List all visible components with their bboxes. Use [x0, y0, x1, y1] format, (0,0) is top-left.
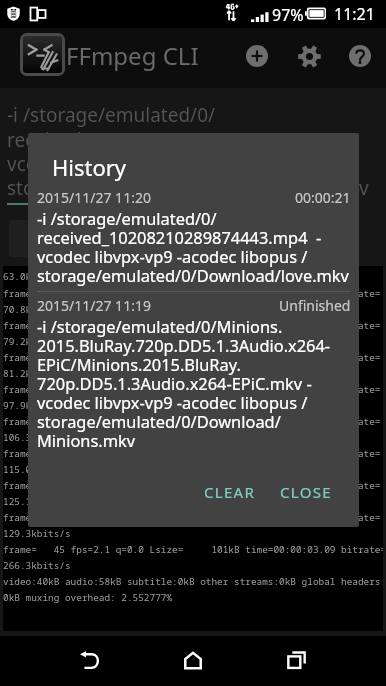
staticText: 2015/11/27 11:20	[37, 188, 151, 207]
button[interactable]: Settings	[293, 40, 325, 72]
button[interactable]: Add	[241, 40, 273, 72]
staticText: FFmpeg CLI	[66, 39, 199, 72]
button[interactable]: CLEAR	[192, 470, 268, 514]
staticText: -i /storage/emulated/0/Minions. 2015.Blu…	[37, 315, 331, 452]
staticText: 00:00:21	[295, 188, 351, 207]
button[interactable]: Help	[344, 40, 376, 72]
staticText: -i /storage/emulated/0/ received_1020821…	[37, 207, 349, 287]
button[interactable]: Home	[169, 636, 217, 684]
staticText: 11:21	[334, 3, 375, 25]
staticText: CLOSE	[280, 482, 332, 502]
staticText: 2015/11/27 11:19	[37, 296, 151, 315]
button[interactable]: Back	[66, 636, 114, 684]
staticText: 63.0kbits/s frame= 22 fps=2.5 q=0.0 size…	[3, 270, 383, 604]
button[interactable]: CLOSE	[268, 470, 344, 514]
staticText: CLEAR	[204, 482, 256, 502]
staticText: 97%	[272, 4, 304, 26]
button[interactable]: Recents	[272, 636, 320, 684]
staticText: -i /storage/emulated/0/ received_1020821…	[7, 102, 369, 201]
staticText: History	[52, 152, 127, 182]
staticText: Unfinished	[279, 296, 351, 315]
button[interactable]	[9, 220, 102, 257]
